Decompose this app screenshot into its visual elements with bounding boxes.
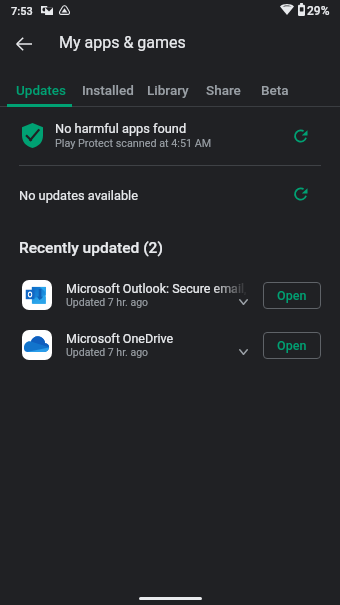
- button[interactable]: Refresh: [284, 119, 318, 153]
- staticText: My apps & games: [59, 33, 186, 52]
- staticText: 29%: [307, 4, 330, 18]
- staticText: Open: [277, 288, 307, 303]
- staticText: Microsoft Outlook: Secure email, c: [66, 281, 248, 295]
- staticText: Updated 7 hr. ago: [66, 346, 149, 358]
- button[interactable]: Updates: [9, 76, 74, 103]
- button[interactable]: No updates available: [0, 172, 340, 217]
- button[interactable]: Open: [263, 332, 321, 359]
- staticText: No updates available: [19, 188, 138, 203]
- button[interactable]: Installed: [72, 76, 143, 103]
- button[interactable]: Microsoft Outlook: Secure email, c: [0, 270, 340, 320]
- staticText: Library: [147, 82, 189, 98]
- button[interactable]: Refresh: [284, 177, 318, 211]
- staticText: Play Protect scanned at 4:51 AM: [55, 137, 212, 150]
- button[interactable]: No harmful apps found: [0, 112, 340, 160]
- staticText: Installed: [82, 82, 134, 98]
- button[interactable]: Share: [196, 76, 251, 103]
- button[interactable]: Microsoft OneDrive: [0, 320, 340, 370]
- staticText: Open: [277, 338, 307, 353]
- staticText: Recently updated (2): [19, 239, 163, 257]
- staticText: Microsoft OneDrive: [66, 331, 174, 345]
- button[interactable]: Back: [6, 26, 42, 62]
- button[interactable]: Open: [263, 282, 321, 309]
- button[interactable]: Library: [143, 76, 192, 103]
- button[interactable]: Expand: [231, 331, 255, 355]
- button[interactable]: Expand: [231, 281, 255, 305]
- button[interactable]: Beta: [251, 76, 299, 103]
- staticText: No harmful apps found: [55, 121, 187, 136]
- staticText: 7:53: [11, 5, 33, 18]
- staticText: Share: [206, 82, 241, 98]
- staticText: Updated 7 hr. ago: [66, 296, 149, 308]
- staticText: Beta: [261, 82, 289, 98]
- staticText: Updates: [16, 82, 67, 98]
